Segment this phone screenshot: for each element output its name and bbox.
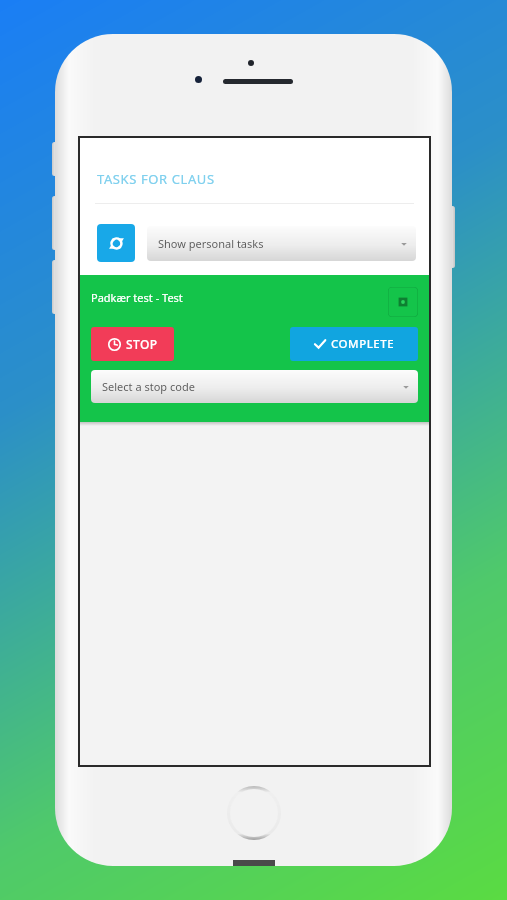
button[interactable]: Select a stop code bbox=[91, 370, 418, 403]
button[interactable]: STOP bbox=[91, 327, 174, 361]
staticText: STOP bbox=[126, 336, 158, 352]
button[interactable]: Show personal tasks bbox=[147, 226, 416, 261]
staticText: TASKS FOR CLAUS bbox=[97, 170, 215, 188]
button[interactable]: Task details bbox=[388, 287, 418, 317]
button[interactable]: Refresh bbox=[97, 224, 135, 262]
button[interactable]: COMPLETE bbox=[290, 327, 418, 361]
staticText: Show personal tasks bbox=[158, 236, 264, 251]
staticText: Select a stop code bbox=[102, 379, 195, 394]
staticText: Padkær test - Test bbox=[91, 290, 183, 305]
staticText: COMPLETE bbox=[331, 336, 395, 352]
